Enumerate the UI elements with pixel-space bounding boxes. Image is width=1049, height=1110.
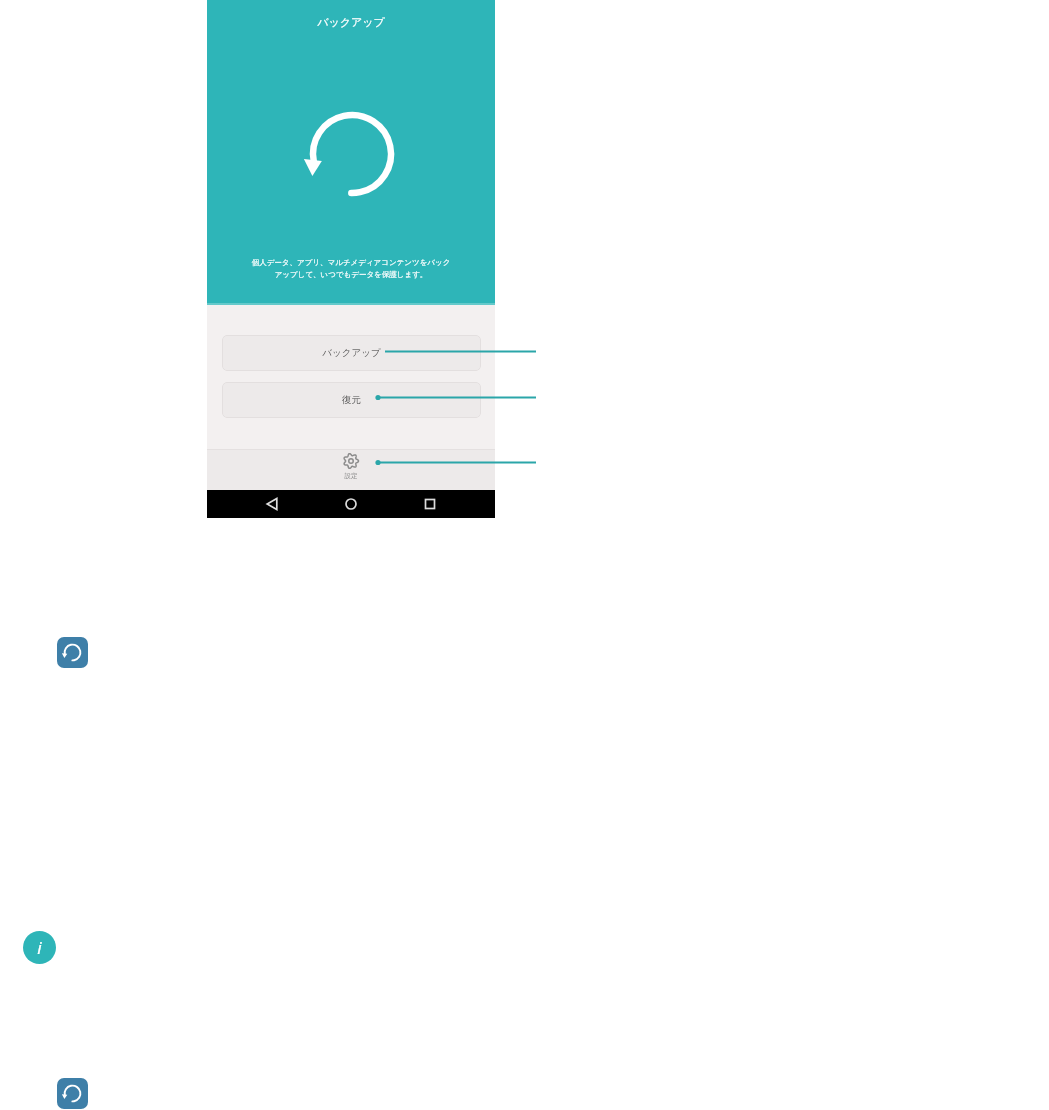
staticText: バックアップ (207, 15, 495, 29)
button[interactable]: Back (258, 490, 286, 518)
staticText: 復元 (222, 394, 481, 406)
staticText: バックアップ (222, 347, 481, 359)
button[interactable]: Info (23, 931, 56, 964)
button[interactable]: Backup app icon (57, 1078, 88, 1109)
button[interactable]: バックアップ (222, 335, 481, 371)
staticText: アップして、いつでもデータを保護します。 (207, 270, 495, 279)
staticText: 設定 (207, 472, 495, 480)
staticText: 個人データ、アプリ、マルチメディアコンテンツをバック (207, 258, 495, 267)
button[interactable]: 復元 (222, 382, 481, 418)
button[interactable]: Backup app icon (57, 637, 88, 668)
other: 設定 (342, 452, 360, 470)
staticText: i (23, 936, 56, 959)
button[interactable]: Recents (416, 490, 444, 518)
button[interactable]: Home (337, 490, 365, 518)
button[interactable]: 設定 (207, 452, 495, 480)
